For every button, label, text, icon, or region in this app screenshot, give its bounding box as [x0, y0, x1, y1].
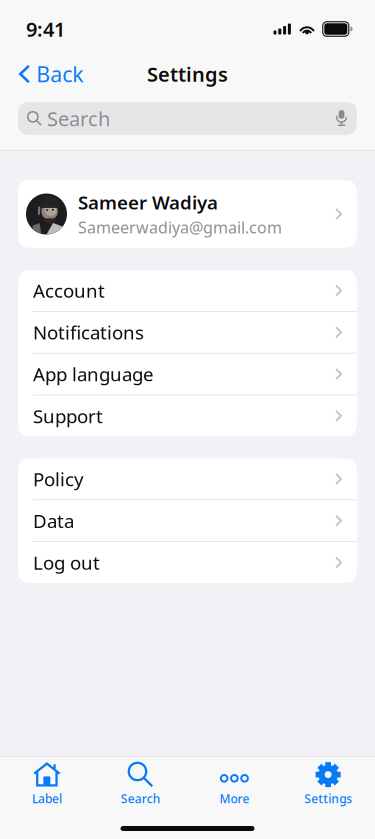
staticText: Back — [36, 60, 83, 88]
staticText: Account — [33, 278, 105, 303]
staticText: Settings — [304, 791, 352, 806]
button[interactable]: Label — [0, 757, 94, 806]
staticText: Label — [32, 791, 62, 806]
button[interactable]: Policy — [18, 458, 357, 499]
staticText: Support — [33, 403, 103, 428]
staticText: Data — [33, 508, 74, 533]
staticText: Policy — [33, 466, 84, 491]
staticText: 9:41 — [26, 16, 65, 42]
staticText: App language — [33, 362, 154, 386]
button[interactable]: Voice search — [333, 110, 350, 127]
staticText: Settings — [147, 61, 228, 87]
staticText: Search — [47, 105, 110, 132]
button[interactable]: Support — [18, 395, 357, 436]
staticText: Sameerwadiya@gmail.com — [78, 217, 282, 238]
button[interactable]: Notifications — [18, 312, 357, 353]
button[interactable]: Log out — [18, 542, 357, 583]
button[interactable]: More — [187, 757, 281, 806]
button[interactable]: App language — [18, 354, 357, 395]
button[interactable]: Account — [18, 270, 357, 311]
button[interactable]: Back — [0, 55, 93, 93]
staticText: Notifications — [33, 320, 144, 345]
staticText: Search — [121, 791, 161, 806]
button[interactable]: Search — [94, 757, 188, 806]
staticText: Sameer Wadiya — [78, 190, 218, 215]
button[interactable]: Search — [18, 102, 357, 135]
button[interactable]: Settings — [281, 757, 375, 806]
button[interactable]: Sameer Wadiya — [18, 180, 357, 248]
staticText: Log out — [33, 550, 100, 575]
button[interactable]: Data — [18, 500, 357, 541]
staticText: More — [219, 791, 249, 806]
